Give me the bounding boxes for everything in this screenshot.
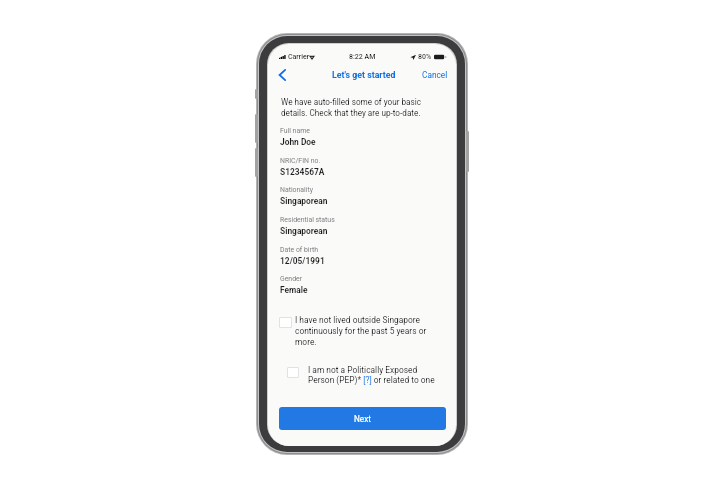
staticText: Singaporean (280, 226, 328, 236)
staticText: Carrier (288, 53, 310, 61)
staticText: Cancel (422, 70, 448, 80)
staticText: Nationality (280, 186, 313, 194)
staticText: Full name (280, 127, 310, 135)
staticText: Residential status (280, 216, 335, 224)
staticText: John Doe (280, 137, 316, 147)
staticText: Singaporean (280, 196, 328, 206)
staticText: NRIC/FIN no. (280, 157, 321, 165)
staticText: I am not a Politically Exposed Person (P… (308, 365, 435, 385)
staticText: We have auto-filled some of your basic d… (281, 97, 422, 118)
button[interactable]: Back (275, 66, 289, 84)
button[interactable]: I am not a Politically Exposed Person (P… (287, 365, 449, 385)
staticText: Next (354, 414, 371, 424)
button[interactable]: Next (279, 407, 446, 430)
staticText: 12/05/1991 (280, 256, 325, 266)
staticText: 80% (418, 53, 432, 61)
staticText: Female (280, 285, 308, 295)
staticText: Date of birth (280, 246, 319, 254)
staticText: Gender (280, 275, 303, 283)
staticText: Let's get started (332, 70, 396, 80)
staticText: I have not lived outside Singapore conti… (295, 315, 427, 347)
button[interactable]: Cancel (421, 67, 449, 83)
button[interactable]: I have not lived outside Singapore conti… (279, 315, 449, 347)
staticText: S1234567A (280, 167, 325, 177)
staticText: 8:22 AM (349, 53, 376, 61)
